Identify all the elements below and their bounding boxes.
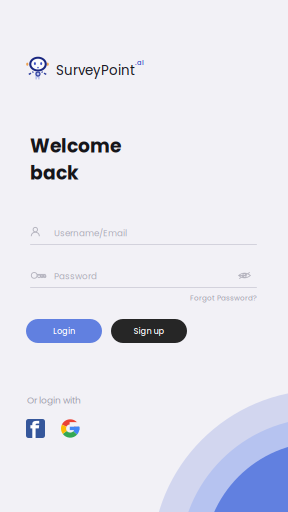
staticText: .ai <box>135 58 144 67</box>
button[interactable]: Show password <box>238 271 251 280</box>
staticText: Password <box>54 270 97 282</box>
button[interactable]: Sign up <box>111 319 187 343</box>
button[interactable]: Login <box>26 319 102 343</box>
staticText: Welcome <box>30 133 121 159</box>
button[interactable]: Continue with Google <box>61 419 79 438</box>
staticText: Login <box>53 325 75 337</box>
staticText: back <box>30 160 79 186</box>
button[interactable]: Forgot Password? <box>190 293 257 303</box>
staticText: SurveyPoint <box>56 61 135 80</box>
button[interactable]: Continue with Facebook <box>26 419 45 438</box>
staticText: Or login with <box>27 394 81 407</box>
staticText: Forgot Password? <box>190 293 257 303</box>
staticText: Username/Email <box>54 227 127 239</box>
staticText: Sign up <box>133 325 164 337</box>
